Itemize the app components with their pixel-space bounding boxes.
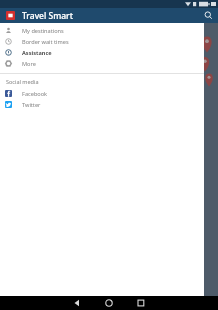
staticText: Assistance [22, 49, 52, 57]
other: App logo [6, 11, 15, 20]
button[interactable]: Twitter [0, 99, 204, 110]
staticText: Border wait times [22, 38, 69, 46]
button[interactable]: Assistance [0, 47, 204, 58]
staticText: More [22, 60, 36, 68]
button[interactable]: My destinations [0, 25, 204, 36]
button[interactable]: Border wait times [0, 36, 204, 47]
button[interactable]: Search [201, 8, 216, 23]
staticText: My destinations [22, 27, 64, 35]
staticText: Travel Smart [22, 10, 73, 22]
staticText: Facebook [22, 90, 48, 98]
button[interactable]: Facebook [0, 88, 204, 99]
button[interactable]: More [0, 58, 204, 69]
staticText: Twitter [22, 101, 41, 109]
staticText: Social media [6, 78, 39, 85]
